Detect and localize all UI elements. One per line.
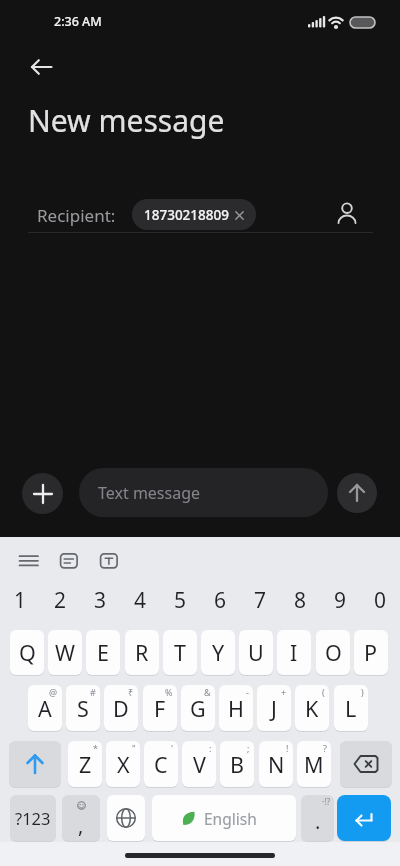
button[interactable]: B xyxy=(220,741,254,787)
button[interactable]: O xyxy=(316,630,350,675)
button[interactable]: F xyxy=(143,685,177,731)
staticText: X xyxy=(117,750,130,779)
button[interactable]: E xyxy=(86,630,120,675)
staticText: " xyxy=(132,742,136,754)
button[interactable]: I xyxy=(277,630,311,675)
staticText: ; xyxy=(247,742,250,754)
button[interactable]: G xyxy=(181,685,215,731)
staticText: C xyxy=(154,750,168,779)
staticText: 2 xyxy=(54,586,67,615)
staticText: ! xyxy=(286,742,289,754)
button[interactable]: English xyxy=(152,795,296,841)
button[interactable]: 9 xyxy=(320,578,360,622)
staticText: 1 xyxy=(14,586,27,615)
staticText: 6 xyxy=(214,586,227,615)
button[interactable]: S xyxy=(66,685,100,731)
staticText: ( xyxy=(322,686,325,698)
staticText: R xyxy=(135,638,149,667)
staticText: 18730218809 xyxy=(144,206,229,224)
staticText: 0 xyxy=(374,586,387,615)
staticText: H xyxy=(228,694,244,723)
button[interactable]: 7 xyxy=(240,578,280,622)
button[interactable]: 5 xyxy=(160,578,200,622)
staticText: 4 xyxy=(134,586,147,615)
staticText: M xyxy=(304,750,324,779)
staticText: 7 xyxy=(254,586,267,615)
staticText: E xyxy=(97,638,109,667)
button[interactable]: 18730218809 xyxy=(132,199,256,230)
button[interactable]: X xyxy=(106,741,140,787)
staticText: K xyxy=(305,694,319,723)
button[interactable] xyxy=(9,741,61,787)
staticText: # xyxy=(90,686,96,698)
staticText: 9 xyxy=(334,586,347,615)
staticText: ' xyxy=(171,742,174,754)
button[interactable]: Q xyxy=(10,630,44,675)
staticText: * xyxy=(93,742,98,754)
button[interactable]: W xyxy=(48,630,82,675)
staticText: S xyxy=(77,694,89,723)
button[interactable] xyxy=(24,49,60,85)
button[interactable]: R xyxy=(125,630,159,675)
button[interactable]: V xyxy=(182,741,216,787)
button[interactable] xyxy=(100,553,118,569)
staticText: English xyxy=(204,808,257,829)
staticText: P xyxy=(364,638,378,667)
staticText: : xyxy=(209,742,212,754)
button[interactable]: ·!? xyxy=(301,795,334,841)
staticText: + xyxy=(281,686,287,698)
button[interactable] xyxy=(60,553,78,569)
staticText: F xyxy=(154,694,166,723)
staticText: 3 xyxy=(94,586,107,615)
button[interactable]: ?123 xyxy=(10,795,56,841)
button[interactable]: 8 xyxy=(280,578,320,622)
button[interactable]: 4 xyxy=(120,578,160,622)
staticText: G xyxy=(190,694,206,723)
staticText: ·!? xyxy=(322,796,331,808)
staticText: N xyxy=(268,750,285,779)
button[interactable]: T xyxy=(163,630,197,675)
button[interactable]: A xyxy=(28,685,62,731)
button[interactable]: N xyxy=(259,741,293,787)
staticText: ?123 xyxy=(15,807,51,829)
button[interactable] xyxy=(337,795,391,841)
button[interactable]: Text message xyxy=(79,468,328,517)
staticText: V xyxy=(193,750,206,779)
button[interactable]: L xyxy=(334,685,368,731)
button[interactable]: Z xyxy=(68,741,102,787)
button[interactable]: U xyxy=(239,630,273,675)
button[interactable]: C xyxy=(144,741,178,787)
button[interactable]: , xyxy=(62,795,100,841)
staticText: , xyxy=(78,812,84,839)
staticText: & xyxy=(204,686,211,698)
button[interactable] xyxy=(22,473,63,514)
staticText: % xyxy=(165,686,173,698)
button[interactable] xyxy=(19,553,39,571)
staticText: 5 xyxy=(174,586,187,615)
button[interactable]: Y xyxy=(201,630,235,675)
button[interactable]: 6 xyxy=(200,578,240,622)
button[interactable]: 1 xyxy=(0,578,40,622)
button[interactable] xyxy=(340,741,392,787)
button[interactable]: D xyxy=(104,685,138,731)
staticText: . xyxy=(315,808,321,835)
button[interactable] xyxy=(107,795,145,841)
staticText: Z xyxy=(79,750,92,779)
button[interactable]: 2 xyxy=(40,578,80,622)
button[interactable]: M xyxy=(297,741,331,787)
staticText: New message xyxy=(28,100,225,141)
staticText: O xyxy=(325,638,342,667)
staticText: Recipient: xyxy=(37,204,116,227)
button[interactable]: 0 xyxy=(360,578,400,622)
staticText: B xyxy=(230,750,244,779)
staticText: U xyxy=(248,638,264,667)
button[interactable]: K xyxy=(295,685,329,731)
button[interactable]: 3 xyxy=(80,578,120,622)
button[interactable]: J xyxy=(257,685,291,731)
button[interactable] xyxy=(332,199,362,229)
button[interactable]: H xyxy=(219,685,253,731)
button[interactable]: P xyxy=(354,630,388,675)
staticText: A xyxy=(38,694,52,723)
staticText: T xyxy=(174,638,186,667)
button[interactable] xyxy=(337,473,377,513)
